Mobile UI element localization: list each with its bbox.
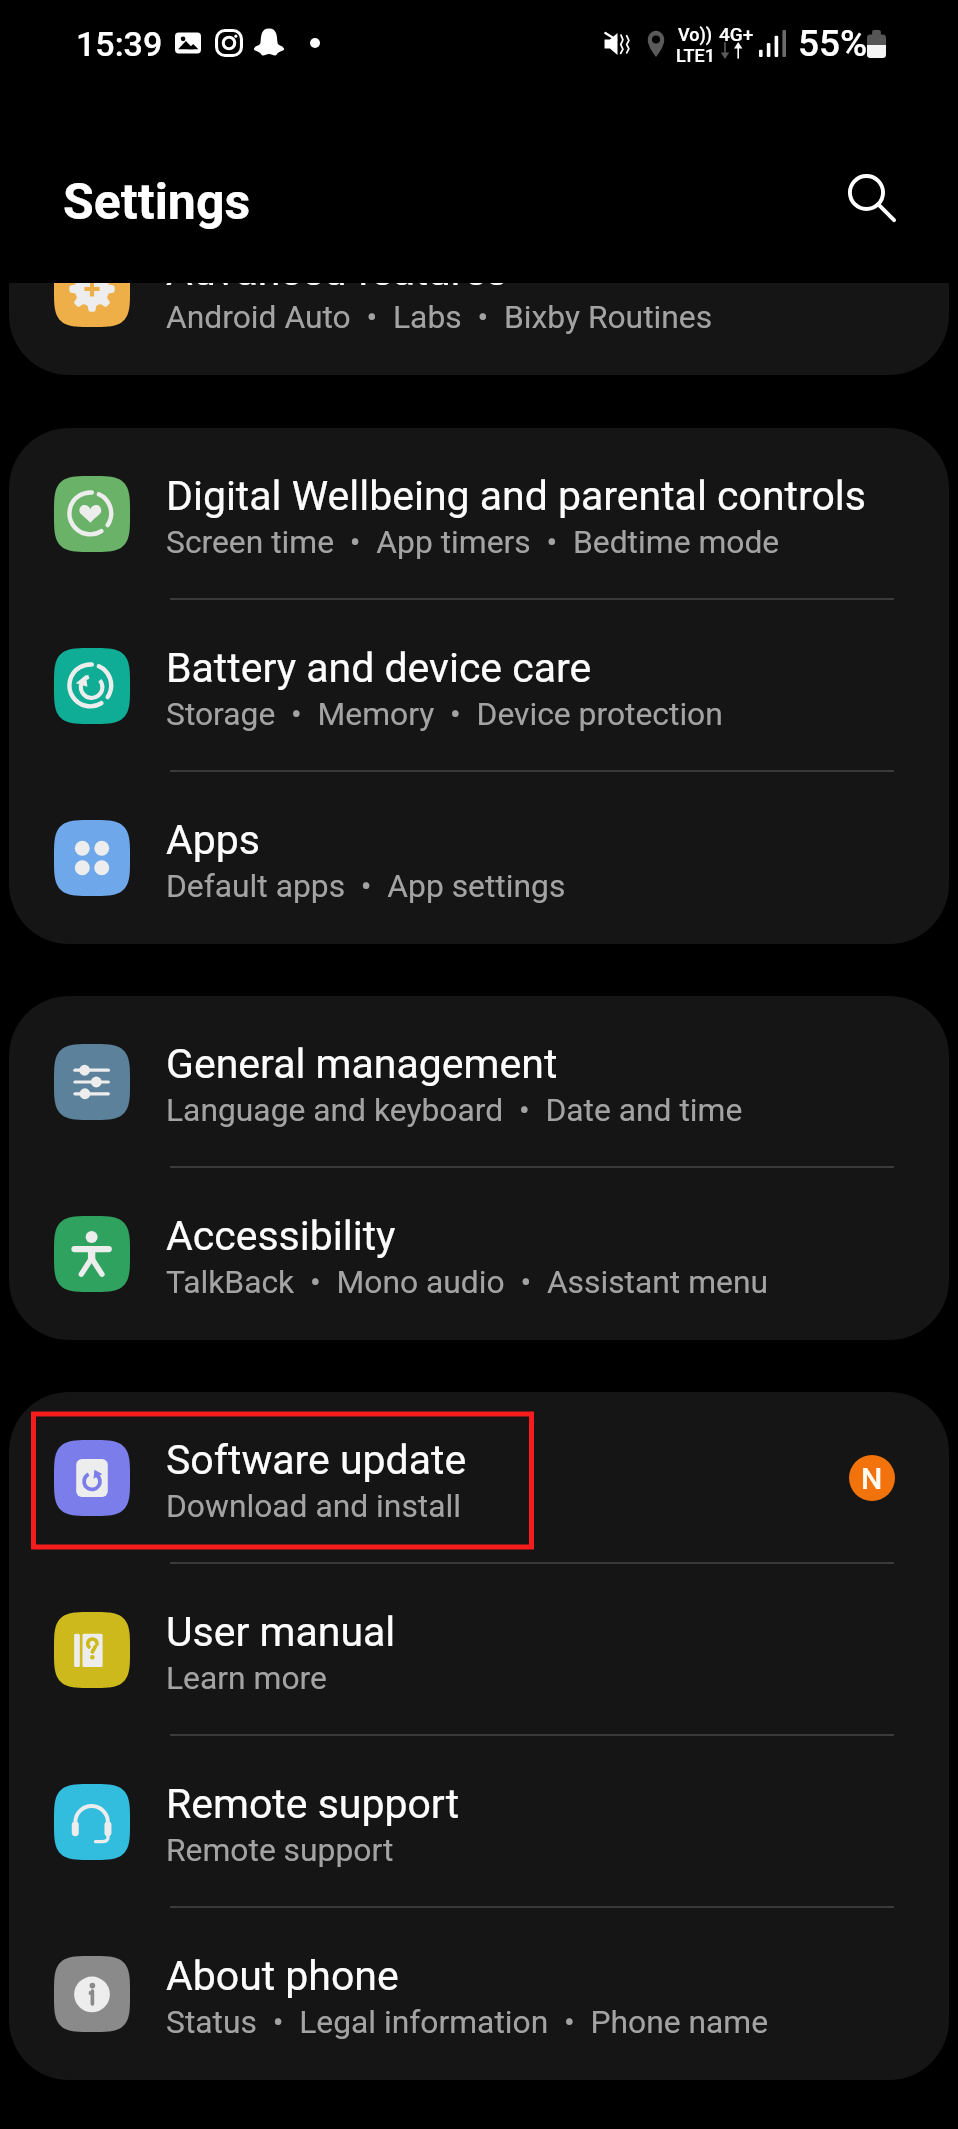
button[interactable]: About phone bbox=[9, 1908, 949, 2080]
staticText: 4G+ bbox=[719, 23, 754, 45]
staticText: N bbox=[861, 1461, 883, 1496]
staticText: Language and keyboard • Date and time bbox=[166, 1091, 743, 1128]
staticText: General management bbox=[166, 1040, 558, 1088]
staticText: Storage • Memory • Device protection bbox=[166, 695, 723, 732]
staticText: Download and install bbox=[166, 1487, 461, 1524]
staticText: 15:39 bbox=[76, 24, 163, 64]
button[interactable]: Digital Wellbeing and parental controls bbox=[9, 428, 949, 600]
button[interactable]: Accessibility bbox=[9, 1168, 949, 1340]
staticText: LTE1 bbox=[676, 45, 715, 66]
button[interactable]: Software update bbox=[9, 1392, 949, 1564]
button[interactable]: Advanced features bbox=[9, 283, 949, 375]
button[interactable]: Battery and device care bbox=[9, 600, 949, 772]
staticText: Screen time • App timers • Bedtime mode bbox=[166, 523, 780, 560]
staticText: Vo)) bbox=[678, 24, 713, 45]
staticText: Learn more bbox=[166, 1659, 327, 1696]
staticText: Settings bbox=[63, 173, 251, 232]
staticText: Android Auto • Labs • Bixby Routines bbox=[166, 298, 713, 335]
button[interactable]: Apps bbox=[9, 772, 949, 944]
staticText: Apps bbox=[166, 816, 260, 864]
staticText: Digital Wellbeing and parental controls bbox=[166, 472, 866, 520]
staticText: Remote support bbox=[166, 1831, 394, 1868]
staticText: Status • Legal information • Phone name bbox=[166, 2003, 769, 2040]
staticText: User manual bbox=[166, 1608, 396, 1656]
staticText: Accessibility bbox=[166, 1212, 396, 1260]
staticText: Remote support bbox=[166, 1780, 460, 1828]
button[interactable]: General management bbox=[9, 996, 949, 1168]
button[interactable]: Remote support bbox=[9, 1736, 949, 1908]
staticText: Default apps • App settings bbox=[166, 867, 566, 904]
staticText: Software update bbox=[166, 1436, 467, 1484]
button[interactable]: User manual bbox=[9, 1564, 949, 1736]
staticText: About phone bbox=[166, 1952, 399, 2000]
staticText: TalkBack • Mono audio • Assistant menu bbox=[166, 1263, 768, 1300]
staticText: 55% bbox=[798, 22, 868, 65]
staticText: Battery and device care bbox=[166, 644, 592, 692]
button[interactable]: Search bbox=[825, 151, 919, 245]
staticText: Advanced features bbox=[166, 283, 508, 295]
